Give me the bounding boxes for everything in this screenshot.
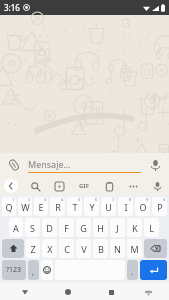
staticText: P xyxy=(157,201,163,213)
staticText: 7 xyxy=(112,197,115,202)
button[interactable]: Collapse toolbar xyxy=(4,179,18,193)
button[interactable]: Hide keyboard xyxy=(141,285,155,299)
button[interactable]: . xyxy=(127,260,138,280)
staticText: GIF xyxy=(79,182,89,190)
button[interactable]: R xyxy=(50,197,65,216)
staticText: E xyxy=(38,201,44,213)
staticText: 8 xyxy=(129,197,132,202)
staticText: Q xyxy=(5,201,13,213)
staticText: O xyxy=(139,201,147,213)
staticText: J xyxy=(116,222,119,234)
staticText: 6 xyxy=(95,197,98,202)
button[interactable]: , xyxy=(28,260,39,280)
button[interactable]: Search xyxy=(27,178,43,194)
button[interactable]: A xyxy=(9,218,23,237)
staticText: Z xyxy=(30,243,36,255)
button[interactable]: J xyxy=(110,218,125,237)
staticText: 4 xyxy=(61,197,64,202)
button[interactable]: X xyxy=(42,239,57,258)
button[interactable]: Clipboard xyxy=(101,178,117,194)
button[interactable]: V xyxy=(76,239,91,258)
staticText: 3 xyxy=(44,197,47,202)
button[interactable]: F xyxy=(59,218,74,237)
button[interactable]: Attach xyxy=(4,155,24,175)
staticText: R xyxy=(55,201,61,213)
button[interactable]: Voice message xyxy=(145,155,165,175)
button[interactable]: Shift xyxy=(2,239,24,258)
staticText: N xyxy=(114,243,121,255)
button[interactable]: More options xyxy=(125,178,141,194)
staticText: B xyxy=(98,243,104,255)
staticText: G xyxy=(80,222,87,234)
button[interactable]: S xyxy=(25,218,40,237)
staticText: X xyxy=(47,243,53,255)
staticText: 1 xyxy=(12,197,15,202)
button[interactable]: L xyxy=(144,218,159,237)
staticText: C xyxy=(64,243,70,255)
staticText: D xyxy=(46,222,53,234)
button[interactable]: C xyxy=(59,239,74,258)
button[interactable]: P xyxy=(152,197,167,216)
button[interactable]: Recent apps xyxy=(104,285,118,299)
staticText: L xyxy=(149,222,154,234)
staticText: H xyxy=(97,222,104,234)
button[interactable]: M xyxy=(127,239,142,258)
button[interactable]: Backspace xyxy=(144,239,167,258)
button[interactable]: K xyxy=(127,218,142,237)
staticText: 0 xyxy=(163,197,166,202)
button[interactable]: Y xyxy=(84,197,99,216)
button[interactable]: U xyxy=(101,197,116,216)
staticText: ?123 xyxy=(6,265,22,275)
button[interactable]: E xyxy=(34,197,48,216)
button[interactable]: O xyxy=(135,197,150,216)
staticText: M xyxy=(130,243,139,255)
staticText: K xyxy=(132,222,138,234)
button[interactable]: Home xyxy=(61,285,75,299)
button[interactable]: Q xyxy=(2,197,16,216)
button[interactable]: T xyxy=(67,197,82,216)
button[interactable]: Stickers xyxy=(51,178,67,194)
staticText: I xyxy=(124,201,128,213)
button[interactable]: ?123 xyxy=(2,260,26,280)
staticText: F xyxy=(64,222,69,234)
button[interactable]: W xyxy=(18,197,32,216)
button[interactable]: D xyxy=(42,218,57,237)
staticText: Y xyxy=(89,201,95,213)
staticText: . xyxy=(131,266,134,277)
button[interactable]: GIF xyxy=(75,177,93,195)
staticText: V xyxy=(81,243,87,255)
button[interactable]: Back xyxy=(18,285,32,299)
staticText: U xyxy=(105,201,112,213)
staticText: 2 xyxy=(28,197,31,202)
button[interactable]: G xyxy=(76,218,91,237)
button[interactable]: H xyxy=(93,218,108,237)
staticText: Mensaje… xyxy=(28,158,71,170)
button[interactable]: I xyxy=(118,197,133,216)
staticText: A xyxy=(13,222,19,234)
staticText: S xyxy=(30,222,35,234)
button[interactable]: Enter xyxy=(140,260,167,280)
staticText: T xyxy=(72,201,78,213)
button[interactable]: Voice input xyxy=(149,178,165,194)
button[interactable]: B xyxy=(93,239,108,258)
staticText: 3:16 xyxy=(4,2,20,13)
staticText: , xyxy=(32,266,35,277)
button[interactable]: N xyxy=(110,239,125,258)
button[interactable]: Emoji xyxy=(41,260,53,280)
staticText: 9 xyxy=(146,197,149,202)
button[interactable]: Z xyxy=(26,239,40,258)
staticText: W xyxy=(21,201,30,213)
staticText: 5 xyxy=(78,197,81,202)
